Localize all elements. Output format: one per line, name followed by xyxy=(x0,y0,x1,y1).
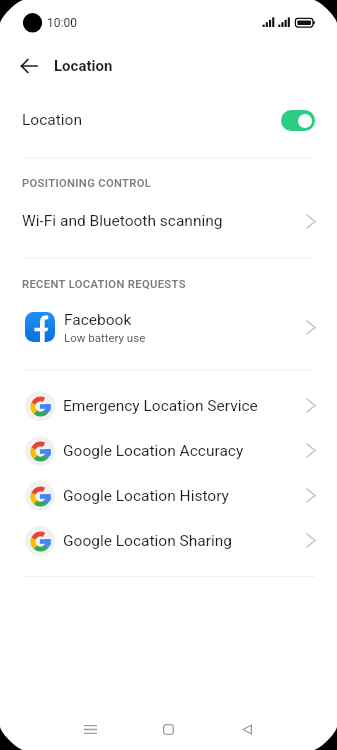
staticText: Location xyxy=(22,111,281,129)
staticText: Google Location Sharing xyxy=(63,532,307,550)
staticText: Location xyxy=(54,57,113,75)
staticText: POSITIONING CONTROL xyxy=(22,177,152,190)
staticText: 10:00 xyxy=(47,16,77,30)
button[interactable]: Google Location Accuracy xyxy=(0,428,337,473)
staticText: RECENT LOCATION REQUESTS xyxy=(22,278,186,291)
staticText: Low battery use xyxy=(64,331,146,344)
button[interactable]: Back xyxy=(226,709,267,749)
button[interactable]: Recent apps xyxy=(70,709,111,749)
button[interactable]: Wi-Fi and Bluetooth scanning xyxy=(0,199,337,243)
button[interactable]: Location toggle xyxy=(281,110,315,131)
staticText: Emergency Location Service xyxy=(63,397,307,415)
button[interactable]: Location xyxy=(0,96,337,144)
button[interactable]: Google Location History xyxy=(0,473,337,518)
button[interactable]: Emergency Location Service xyxy=(0,383,337,428)
button[interactable]: Home xyxy=(148,709,189,749)
button[interactable]: Google Location Sharing xyxy=(0,518,337,563)
button[interactable]: Facebook xyxy=(0,299,337,355)
button[interactable]: Back xyxy=(13,50,45,82)
staticText: Facebook xyxy=(64,311,132,329)
staticText: Google Location History xyxy=(63,487,307,505)
staticText: Google Location Accuracy xyxy=(63,442,307,460)
staticText: Wi-Fi and Bluetooth scanning xyxy=(22,212,307,230)
